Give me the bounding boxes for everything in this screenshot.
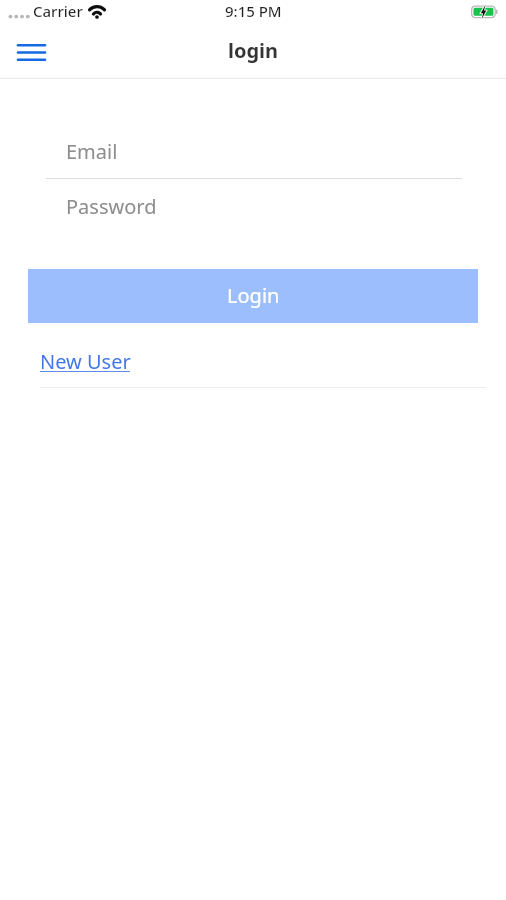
- staticText: Login: [227, 282, 280, 309]
- button[interactable]: Password: [46, 185, 462, 227]
- button[interactable]: Menu: [7, 28, 55, 76]
- staticText: New User: [40, 348, 131, 375]
- staticText: Password: [66, 193, 157, 220]
- button[interactable]: Login: [28, 269, 478, 323]
- staticText: 9:15 PM: [225, 1, 282, 21]
- button[interactable]: Email: [46, 130, 462, 172]
- staticText: login: [228, 37, 279, 64]
- staticText: Carrier: [33, 1, 83, 21]
- button[interactable]: New User: [40, 347, 132, 374]
- staticText: Email: [66, 138, 118, 165]
